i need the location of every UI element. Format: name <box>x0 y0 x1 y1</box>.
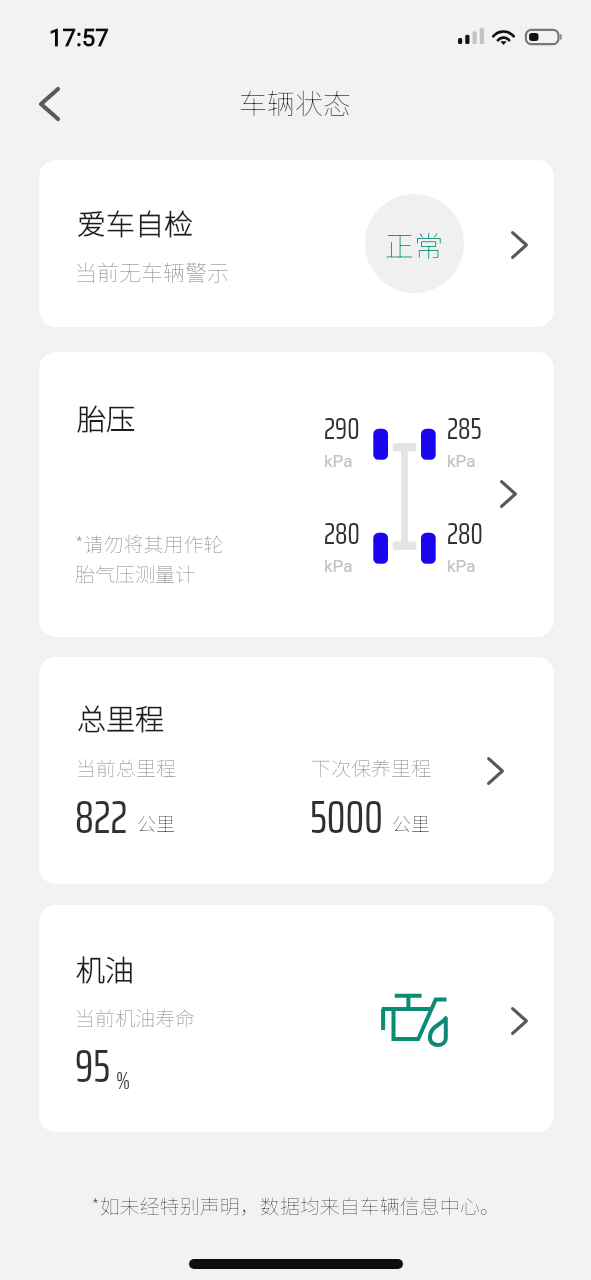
staticText: 下次保养里程 <box>311 753 431 782</box>
staticText: 车辆状态 <box>239 82 352 123</box>
staticText: 爱车自检 <box>77 201 194 243</box>
button[interactable]: 机油 <box>39 905 554 1132</box>
staticText: 5000 <box>310 780 383 854</box>
staticText: 285 <box>447 404 482 453</box>
staticText: 95 <box>75 1029 111 1103</box>
staticText: 当前总里程 <box>76 753 176 782</box>
button[interactable]: 总里程 <box>39 657 554 884</box>
staticText: kPa <box>324 451 353 471</box>
staticText: *请勿将其用作轮 <box>75 529 224 558</box>
staticText: 822 <box>75 780 128 854</box>
staticText: 当前机油寿命 <box>75 1003 195 1032</box>
staticText: 总里程 <box>77 696 165 738</box>
staticText: 胎气压测量计 <box>75 559 195 588</box>
staticText: 公里 <box>137 809 176 837</box>
button[interactable]: Back <box>19 74 79 134</box>
staticText: 胎压 <box>77 396 136 438</box>
staticText: 17:57 <box>49 24 109 52</box>
staticText: kPa <box>447 556 476 576</box>
staticText: 机油 <box>76 947 135 989</box>
button[interactable]: 爱车自检 <box>39 160 554 327</box>
staticText: % <box>116 1061 131 1100</box>
button[interactable]: 胎压 <box>39 352 554 637</box>
staticText: 280 <box>447 509 483 558</box>
staticText: 290 <box>324 404 360 453</box>
staticText: 当前无车辆警示 <box>75 255 230 287</box>
staticText: 公里 <box>392 809 431 837</box>
staticText: *如未经特别声明，数据均来自车辆信息中心。 <box>0 1191 591 1220</box>
staticText: 280 <box>324 509 360 558</box>
staticText: 正常 <box>385 223 444 265</box>
staticText: kPa <box>324 556 353 576</box>
staticText: kPa <box>447 451 476 471</box>
